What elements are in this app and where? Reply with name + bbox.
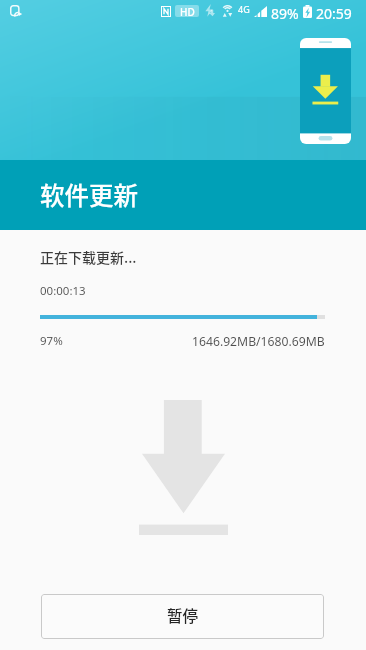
staticText: 正在下载更新... <box>40 247 137 267</box>
other: Software update notification <box>10 5 22 18</box>
staticText: 89% <box>271 4 299 23</box>
button[interactable]: 暂停 <box>41 594 324 639</box>
staticText: 软件更新 <box>40 177 138 212</box>
staticText: HD <box>180 5 195 17</box>
staticText: 暂停 <box>167 604 199 626</box>
staticText: 97% <box>40 333 63 349</box>
staticText: 1646.92MB/1680.69MB <box>192 333 325 350</box>
staticText: 00:00:13 <box>40 283 86 299</box>
staticText: 4G <box>238 3 250 15</box>
staticText: 20:59 <box>316 4 352 23</box>
